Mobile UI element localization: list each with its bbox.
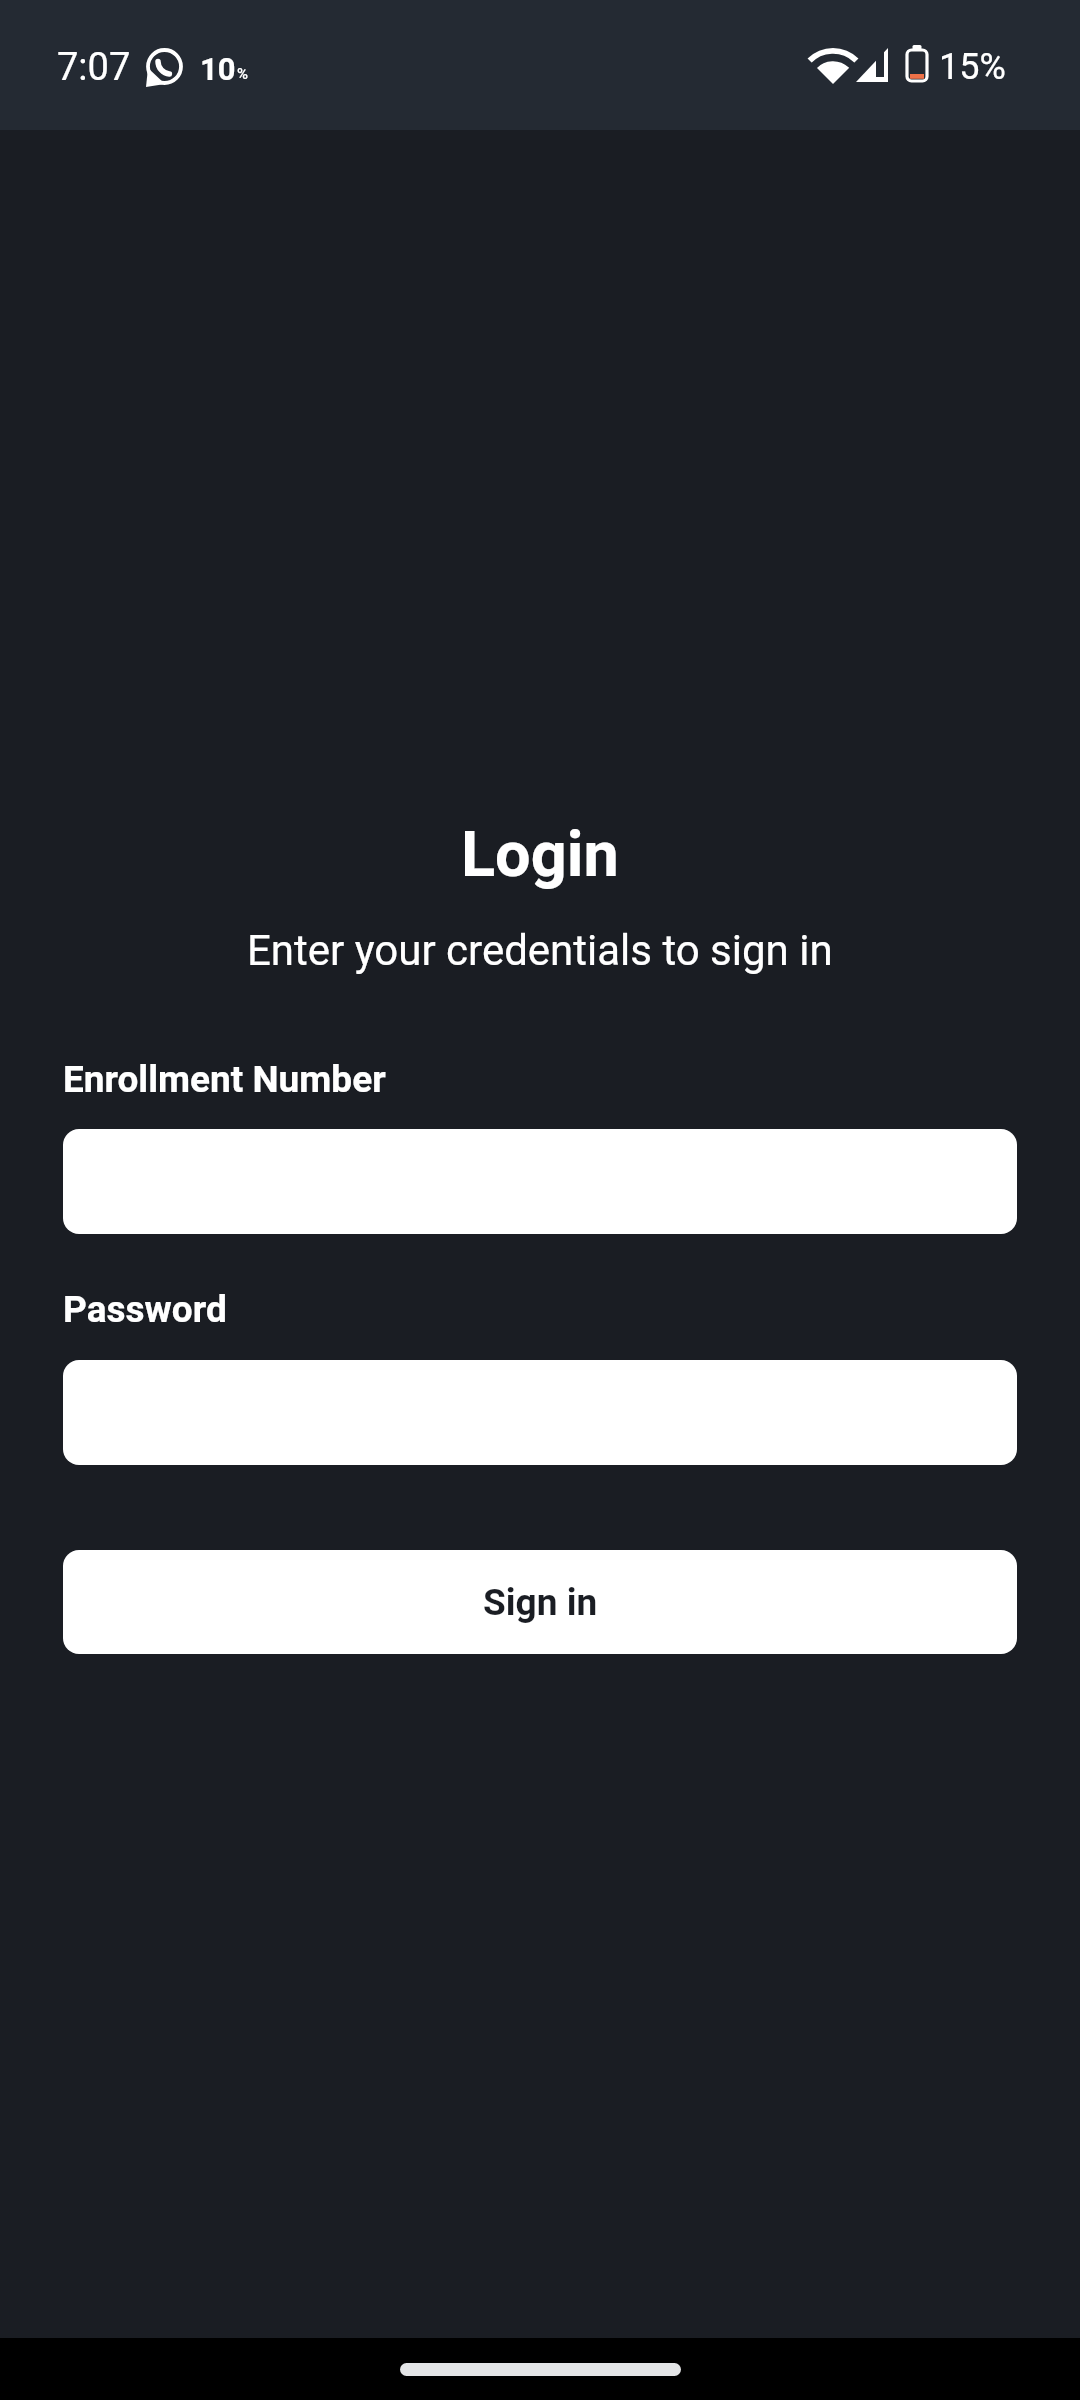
staticText: Login (461, 818, 619, 892)
staticText: Password (63, 1288, 227, 1331)
staticText: Sign in (483, 1581, 598, 1624)
staticText: Enrollment Number (63, 1058, 386, 1101)
staticText: % (237, 65, 249, 83)
button[interactable] (63, 1360, 1017, 1465)
button[interactable] (63, 1129, 1017, 1234)
button[interactable]: Sign in (63, 1550, 1017, 1654)
staticText: 7:07 (57, 45, 131, 90)
staticText: 15% (939, 46, 1006, 88)
staticText: Enter your credentials to sign in (247, 926, 833, 975)
staticText: 10 (200, 51, 236, 87)
